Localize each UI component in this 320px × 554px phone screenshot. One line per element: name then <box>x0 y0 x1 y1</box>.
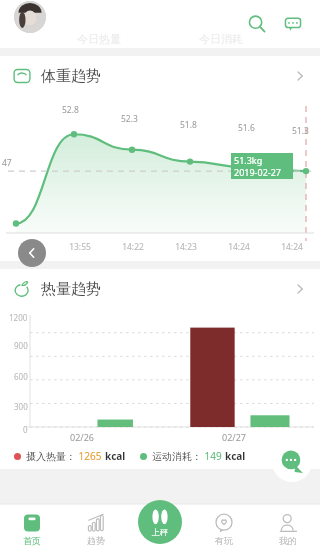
staticText: 上秤 <box>152 527 168 537</box>
staticText: 有玩 <box>215 535 233 546</box>
staticText: 14:24 <box>228 241 250 253</box>
staticText: 14:22 <box>122 241 144 253</box>
staticText: 1200 <box>9 312 28 323</box>
staticText: kcal <box>105 449 126 463</box>
staticText: 47 <box>2 157 12 169</box>
staticText: 趋势 <box>87 535 105 546</box>
staticText: 体重趋势 <box>41 67 101 86</box>
staticText: 149 <box>202 449 225 463</box>
button[interactable]: Back <box>18 239 46 267</box>
staticText: 600 <box>14 371 28 382</box>
staticText: 22:0 <box>20 241 37 253</box>
staticText: 首页 <box>23 535 41 546</box>
button[interactable]: 我的 <box>256 504 320 554</box>
button[interactable]: 有玩 <box>192 504 256 554</box>
button[interactable]: 首页 <box>0 504 64 554</box>
staticText: kcal <box>225 449 246 463</box>
staticText: 52.8 <box>62 104 79 116</box>
staticText: 1265 <box>76 449 105 463</box>
staticText: 2019-02-27 <box>234 166 281 178</box>
staticText: 51.6 <box>238 122 255 134</box>
button[interactable]: 上秤 <box>138 500 182 544</box>
staticText: 运动消耗： <box>152 450 202 463</box>
button[interactable]: 热量趋势 <box>0 269 320 309</box>
staticText: 摄入热量： <box>26 450 76 463</box>
button[interactable]: Profile <box>14 1 46 33</box>
staticText: 51.3 <box>292 125 309 137</box>
staticText: 14:23 <box>175 241 197 253</box>
button[interactable]: Chat <box>272 442 312 482</box>
button[interactable]: Search <box>242 9 272 39</box>
staticText: 51.8 <box>180 119 197 131</box>
button[interactable]: Messages <box>278 9 308 39</box>
staticText: 热量趋势 <box>41 280 101 299</box>
staticText: 0 <box>23 424 28 435</box>
staticText: 52.3 <box>121 113 138 125</box>
staticText: 900 <box>14 340 28 351</box>
staticText: 02/27 <box>222 431 246 443</box>
staticText: 300 <box>14 401 28 412</box>
staticText: 02/26 <box>70 431 94 443</box>
button[interactable]: 体重趋势 <box>0 56 320 96</box>
staticText: 13:55 <box>69 241 91 253</box>
staticText: 我的 <box>279 535 297 546</box>
staticText: 51.3kg <box>234 154 263 166</box>
staticText: 今日消耗 <box>199 32 243 46</box>
staticText: 今日热量 <box>77 32 121 46</box>
staticText: 14:24 <box>281 241 303 253</box>
button[interactable]: 趋势 <box>64 504 128 554</box>
